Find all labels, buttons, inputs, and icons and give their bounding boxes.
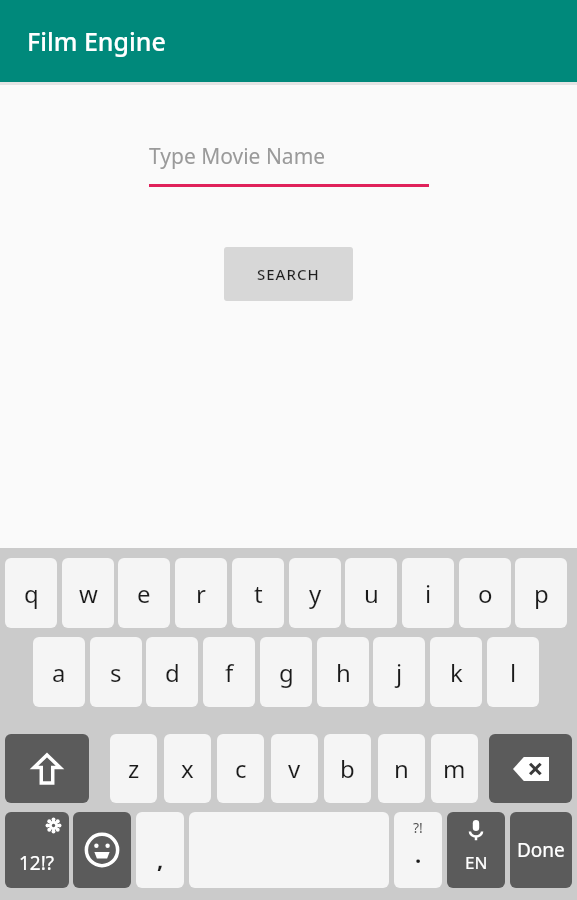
staticText: f — [225, 656, 234, 689]
staticText: m — [443, 752, 466, 785]
button[interactable]: v — [271, 734, 318, 803]
button[interactable]: , — [136, 812, 184, 888]
staticText: q — [24, 577, 39, 610]
button[interactable]: i — [402, 558, 454, 628]
button[interactable]: g — [260, 637, 312, 707]
staticText: z — [128, 752, 140, 785]
staticText: s — [110, 656, 122, 689]
staticText: , — [157, 844, 164, 874]
staticText: u — [364, 577, 379, 610]
staticText: SEARCH — [257, 264, 320, 284]
button[interactable]: j — [373, 637, 425, 707]
button[interactable]: Type Movie Name — [149, 142, 429, 187]
staticText: ?! — [413, 818, 423, 837]
staticText: Type Movie Name — [149, 142, 326, 171]
button[interactable]: c — [217, 734, 264, 803]
button[interactable]: u — [345, 558, 397, 628]
button[interactable]: s — [90, 637, 142, 707]
button[interactable]: ?! — [394, 812, 442, 888]
staticText: p — [534, 577, 549, 610]
button[interactable]: k — [430, 637, 482, 707]
button[interactable]: Voice input, English — [447, 812, 505, 888]
staticText: h — [336, 656, 351, 689]
staticText: y — [309, 577, 322, 610]
staticText: Done — [517, 837, 565, 863]
button[interactable]: z — [110, 734, 157, 803]
staticText: e — [137, 577, 151, 610]
button[interactable]: q — [5, 558, 57, 628]
button[interactable]: Emoji — [73, 812, 131, 888]
staticText: c — [235, 752, 247, 785]
staticText: . — [415, 839, 422, 869]
staticText: o — [478, 577, 493, 610]
button[interactable]: n — [378, 734, 425, 803]
button[interactable]: f — [203, 637, 255, 707]
button[interactable]: t — [232, 558, 284, 628]
staticText: a — [52, 656, 66, 689]
button[interactable]: r — [175, 558, 227, 628]
staticText: d — [165, 656, 180, 689]
button[interactable]: p — [515, 558, 567, 628]
button[interactable]: y — [289, 558, 341, 628]
button[interactable]: l — [487, 637, 539, 707]
staticText: EN — [465, 851, 488, 874]
button[interactable]: e — [118, 558, 170, 628]
button[interactable]: a — [33, 637, 85, 707]
staticText: t — [254, 577, 263, 610]
staticText: i — [425, 577, 432, 610]
staticText: w — [79, 577, 98, 610]
staticText: g — [279, 656, 294, 689]
button[interactable]: b — [324, 734, 371, 803]
button[interactable]: d — [146, 637, 198, 707]
staticText: b — [340, 752, 355, 785]
button[interactable]: Shift — [5, 734, 89, 803]
staticText: v — [288, 752, 301, 785]
staticText: k — [450, 656, 463, 689]
button[interactable]: Done — [510, 812, 572, 888]
button[interactable]: Backspace — [489, 734, 572, 803]
staticText: 12!? — [19, 850, 55, 876]
button[interactable]: h — [317, 637, 369, 707]
button[interactable]: x — [164, 734, 211, 803]
staticText: j — [396, 656, 403, 689]
staticText: x — [181, 752, 194, 785]
button[interactable]: w — [62, 558, 114, 628]
staticText: Film Engine — [27, 24, 166, 58]
button[interactable]: Symbols — [5, 812, 69, 888]
staticText: n — [394, 752, 409, 785]
button[interactable]: o — [459, 558, 511, 628]
button[interactable]: m — [431, 734, 478, 803]
staticText: r — [196, 577, 206, 610]
staticText: l — [510, 656, 517, 689]
button[interactable]: SEARCH — [224, 247, 353, 301]
